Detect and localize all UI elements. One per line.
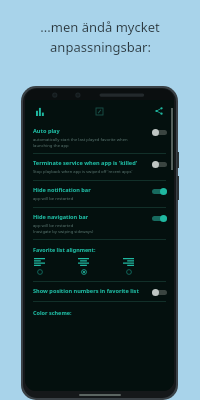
staticText: ...men ändå mycket bbox=[40, 18, 160, 36]
button[interactable]: Hide notification bar bbox=[25, 181, 174, 207]
staticText: anpassningsbar: bbox=[50, 38, 151, 56]
staticText: Stop playback when app is swiped off 're… bbox=[33, 169, 133, 175]
staticText: Terminate service when app is 'killed' bbox=[33, 159, 138, 167]
staticText: app will be restarted (navigate by swipi… bbox=[33, 223, 94, 234]
button[interactable]: Hide navigation bar bbox=[25, 208, 174, 239]
button[interactable]: Alignment option bbox=[33, 257, 46, 276]
button[interactable]: Share bbox=[151, 103, 167, 119]
staticText: Favorite list alignment: bbox=[33, 246, 96, 253]
button[interactable]: Terminate service when app is 'killed' bbox=[25, 154, 174, 180]
staticText: Auto play bbox=[33, 127, 60, 135]
button[interactable]: Alignment option bbox=[122, 257, 135, 276]
button[interactable]: Alignment option bbox=[77, 257, 90, 276]
staticText: automatically start the last played favo… bbox=[33, 137, 148, 148]
button[interactable]: Equalizer bbox=[91, 103, 107, 119]
staticText: Color scheme: bbox=[33, 309, 72, 316]
staticText: Show position numbers in favorite list bbox=[33, 287, 139, 295]
staticText: Hide notification bar bbox=[33, 186, 91, 194]
button[interactable]: Auto play bbox=[25, 122, 174, 153]
staticText: app will be restarted bbox=[33, 196, 74, 202]
button[interactable]: Statistics bbox=[32, 103, 48, 119]
button[interactable]: Show position numbers in favorite list bbox=[25, 282, 174, 301]
staticText: Hide navigation bar bbox=[33, 213, 89, 221]
